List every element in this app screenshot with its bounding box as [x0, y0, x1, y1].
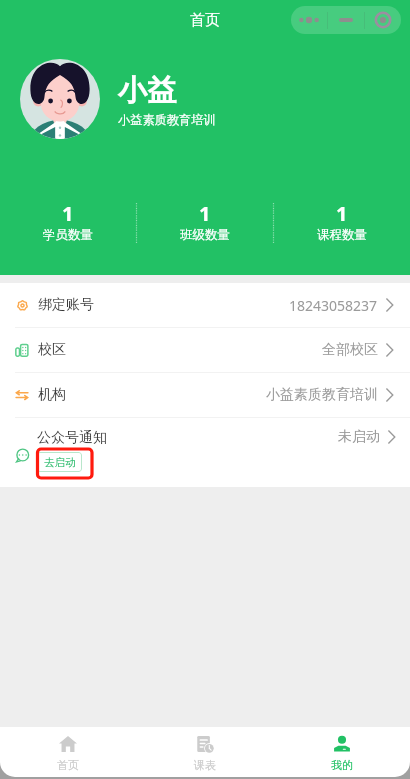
staticText: 去启动 [44, 456, 76, 469]
staticText: 我的 [331, 758, 353, 772]
staticText: 18243058237 [289, 296, 378, 315]
staticText: 1 [336, 200, 348, 227]
button[interactable]: 绑定账号 [0, 283, 410, 327]
button[interactable]: 去启动 [37, 452, 82, 472]
staticText: 首页 [57, 758, 79, 772]
staticText: 机构 [38, 386, 66, 404]
staticText: 全部校区 [322, 341, 378, 359]
button[interactable]: 我的 [273, 727, 410, 777]
button[interactable]: 课表 [136, 727, 273, 777]
staticText: 学员数量 [43, 227, 93, 243]
staticText: 1 [62, 200, 74, 227]
button[interactable]: 公众号通知 [0, 418, 410, 487]
button[interactable]: 首页 [0, 727, 136, 777]
staticText: 校区 [38, 341, 66, 359]
staticText: 小益素质教育培训 [118, 112, 216, 127]
staticText: 公众号通知 [37, 429, 107, 447]
staticText: 班级数量 [180, 227, 230, 243]
button[interactable]: 校区 [0, 328, 410, 372]
staticText: 小益素质教育培训 [266, 386, 378, 404]
staticText: 绑定账号 [38, 296, 94, 314]
button[interactable]: Mini program menu [291, 6, 401, 34]
button[interactable]: 1 [274, 200, 410, 243]
staticText: 课程数量 [317, 227, 367, 243]
staticText: 课表 [194, 758, 216, 772]
staticText: 小益 [118, 72, 176, 109]
button[interactable]: 机构 [0, 373, 410, 417]
staticText: 首页 [190, 11, 220, 30]
button[interactable]: 1 [137, 200, 273, 243]
staticText: 1 [199, 200, 211, 227]
staticText: 未启动 [338, 428, 380, 446]
button[interactable]: 1 [0, 200, 136, 243]
